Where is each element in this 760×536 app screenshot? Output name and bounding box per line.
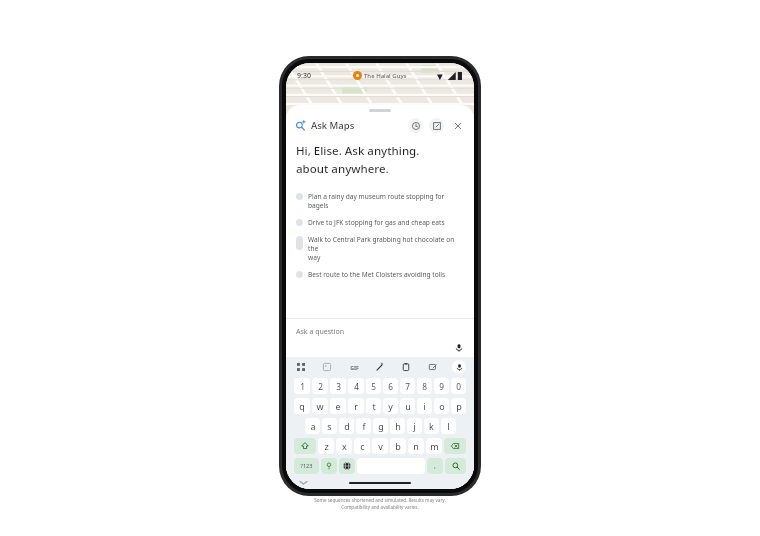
staticText: 7: [405, 381, 410, 392]
staticText: h: [395, 420, 401, 432]
button[interactable]: n: [408, 438, 424, 454]
button[interactable]: k: [424, 418, 439, 434]
button[interactable]: c: [354, 438, 370, 454]
button[interactable]: Close: [450, 118, 465, 133]
button[interactable]: 9: [434, 378, 449, 394]
button[interactable]: 4: [348, 378, 364, 394]
button[interactable]: l: [441, 418, 456, 434]
staticText: about anywhere.: [296, 161, 389, 177]
button[interactable]: i: [417, 398, 432, 414]
staticText: ,: [434, 461, 436, 471]
button[interactable]: z: [318, 438, 334, 454]
button[interactable]: Magic: [373, 360, 387, 374]
button[interactable]: f: [356, 418, 371, 434]
button[interactable]: e: [330, 398, 346, 414]
staticText: a: [310, 420, 316, 432]
staticText: 0: [456, 381, 461, 392]
button[interactable]: w: [312, 398, 328, 414]
staticText: l: [447, 420, 450, 432]
button[interactable]: Search: [445, 458, 466, 474]
button[interactable]: New chat: [429, 118, 444, 133]
staticText: Best route to the Met Cloisters avoiding…: [308, 270, 446, 279]
button[interactable]: Best route to the Met Cloisters avoiding…: [286, 266, 474, 283]
button[interactable]: a: [305, 418, 320, 434]
staticText: j: [413, 420, 416, 432]
staticText: p: [456, 400, 462, 412]
button[interactable]: Drive to JFK stopping for gas and cheap …: [286, 214, 474, 231]
button[interactable]: Clipboard: [399, 360, 413, 374]
staticText: k: [429, 420, 434, 432]
button[interactable]: u: [400, 398, 415, 414]
staticText: Ask Maps: [311, 119, 355, 132]
button[interactable]: Stickers: [320, 360, 334, 374]
button[interactable]: Voice input: [453, 342, 464, 353]
staticText: Compatibility and availability varies.: [341, 504, 419, 510]
button[interactable]: p: [451, 398, 466, 414]
staticText: 8: [422, 381, 427, 392]
button[interactable]: Share: [426, 360, 440, 374]
button[interactable]: GIF: [347, 360, 361, 374]
staticText: c: [360, 440, 365, 452]
button[interactable]: ,: [427, 458, 443, 474]
button[interactable]: x: [336, 438, 352, 454]
staticText: 3: [336, 381, 341, 392]
button[interactable]: Ask a question: [286, 319, 474, 357]
staticText: 5: [371, 381, 376, 392]
staticText: t: [372, 400, 376, 412]
button[interactable]: s: [322, 418, 337, 434]
staticText: b: [395, 440, 401, 452]
button[interactable]: Emoji: [321, 458, 337, 474]
button[interactable]: r: [348, 398, 364, 414]
staticText: s: [327, 420, 332, 432]
button[interactable]: v: [372, 438, 388, 454]
button[interactable]: 0: [451, 378, 466, 394]
button[interactable]: b: [390, 438, 406, 454]
button[interactable]: y: [383, 398, 398, 414]
button[interactable]: d: [339, 418, 354, 434]
staticText: 2: [318, 381, 323, 392]
button[interactable]: Language: [339, 458, 355, 474]
button[interactable]: Microphone: [452, 360, 466, 374]
staticText: 4: [354, 381, 359, 392]
staticText: ?123: [300, 462, 313, 470]
button[interactable]: Shift: [294, 438, 316, 454]
button[interactable]: 5: [366, 378, 381, 394]
staticText: r: [354, 400, 358, 412]
button[interactable]: t: [366, 398, 381, 414]
staticText: Ask a question: [296, 327, 344, 337]
button[interactable]: Clipboard grid: [294, 360, 308, 374]
staticText: Plan a rainy day museum route stopping f…: [308, 192, 464, 210]
button[interactable]: h: [390, 418, 405, 434]
staticText: GIF: [350, 364, 359, 371]
button[interactable]: 2: [312, 378, 328, 394]
staticText: The Halal Guys: [364, 72, 407, 80]
staticText: y: [388, 400, 393, 412]
staticText: Some sequences shortened and simulated. …: [314, 497, 446, 503]
staticText: n: [413, 440, 419, 452]
button[interactable]: q: [294, 398, 310, 414]
button[interactable]: Backspace: [444, 438, 466, 454]
staticText: d: [344, 420, 350, 432]
staticText: u: [405, 400, 411, 412]
button[interactable]: ?123: [294, 458, 319, 474]
staticText: i: [423, 400, 426, 412]
button[interactable]: Walk to Central Park grabbing hot chocol…: [286, 231, 474, 266]
button[interactable]: 7: [400, 378, 415, 394]
staticText: Drive to JFK stopping for gas and cheap …: [308, 218, 445, 227]
button[interactable]: Plan a rainy day museum route stopping f…: [286, 188, 474, 214]
staticText: o: [439, 400, 445, 412]
staticText: f: [362, 420, 366, 432]
button[interactable]: 8: [417, 378, 432, 394]
button[interactable]: g: [373, 418, 388, 434]
button[interactable]: History: [408, 118, 423, 133]
button[interactable]: 1: [294, 378, 310, 394]
staticText: 9:30: [297, 71, 311, 81]
button[interactable]: m: [426, 438, 442, 454]
button[interactable]: 6: [383, 378, 398, 394]
staticText: e: [335, 400, 341, 412]
button[interactable]: j: [407, 418, 422, 434]
staticText: x: [342, 440, 347, 452]
button[interactable]: 3: [330, 378, 346, 394]
button[interactable]: o: [434, 398, 449, 414]
